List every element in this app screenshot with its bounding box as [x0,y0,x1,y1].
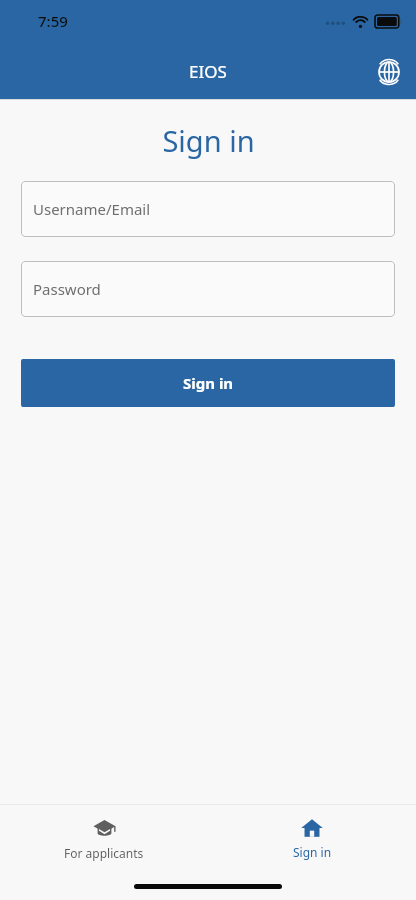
button[interactable]: Change language [361,44,416,99]
button[interactable]: For applicants [0,805,208,869]
staticText: 7:59 [38,11,68,31]
button[interactable]: Username/Email [21,181,395,237]
staticText: Sign in [183,373,234,393]
staticText: For applicants [64,845,144,861]
button[interactable]: Password [21,261,395,317]
staticText: Sign in [162,121,255,160]
staticText: Password [33,279,101,299]
button[interactable]: Sign in [21,359,395,407]
button[interactable]: Sign in [208,805,416,869]
staticText: Sign in [293,844,332,860]
staticText: Username/Email [33,199,151,219]
staticText: EIOS [189,60,227,83]
